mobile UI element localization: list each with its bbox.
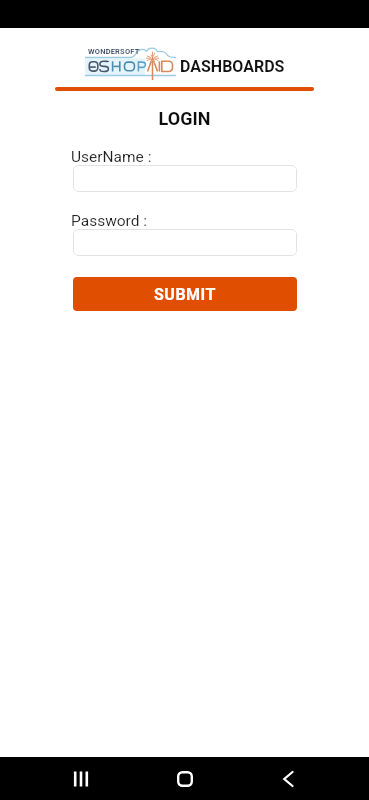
staticText: DASHBOARDS (180, 57, 285, 76)
staticText: Password : (71, 212, 148, 230)
staticText: SUBMIT (154, 285, 216, 304)
button[interactable]: Recents (57, 757, 105, 800)
button[interactable]: SUBMIT (73, 277, 297, 311)
button[interactable]: Back (264, 757, 312, 800)
button[interactable] (73, 229, 297, 256)
staticText: UserName : (71, 148, 152, 166)
button[interactable] (73, 165, 297, 192)
staticText: WONDERSOFT (88, 47, 140, 56)
button[interactable]: Home (161, 757, 209, 800)
staticText: LOGIN (0, 108, 369, 129)
